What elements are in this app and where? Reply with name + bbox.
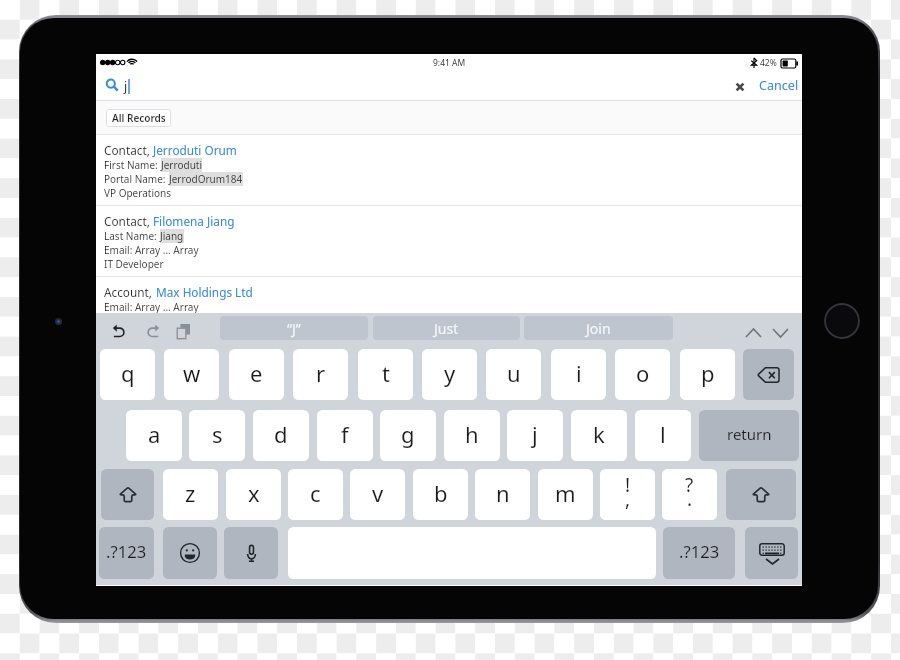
staticText: Join <box>586 319 611 338</box>
staticText: g <box>401 419 415 449</box>
staticText: r <box>316 358 326 388</box>
button[interactable]: Exclamation and comma <box>600 469 655 520</box>
staticText: k <box>593 419 605 449</box>
button[interactable]: q <box>100 349 155 400</box>
button[interactable]: i <box>551 349 606 400</box>
button[interactable]: d <box>253 410 309 461</box>
staticText: j <box>124 78 128 95</box>
button[interactable]: .?123 <box>99 527 154 579</box>
staticText: Email: Array ... Array <box>104 300 199 314</box>
button[interactable]: t <box>358 349 413 400</box>
button[interactable]: m <box>538 469 593 520</box>
staticText: Email: Array ... Array <box>104 243 199 257</box>
staticText: Jiang <box>160 229 184 243</box>
button[interactable]: c <box>288 469 343 520</box>
button[interactable]: Paste <box>177 324 190 339</box>
button[interactable]: o <box>615 349 670 400</box>
staticText: l <box>660 419 666 449</box>
staticText: u <box>507 358 521 388</box>
staticText: “J” <box>287 319 301 338</box>
staticText: f <box>341 419 349 449</box>
staticText: y <box>444 358 456 388</box>
staticText: Portal Name: <box>104 172 169 186</box>
staticText: Cancel <box>759 77 799 94</box>
button[interactable]: n <box>475 469 530 520</box>
button[interactable]: w <box>164 349 219 400</box>
staticText: h <box>465 419 479 449</box>
staticText: z <box>185 478 196 508</box>
staticText: t <box>382 358 390 388</box>
staticText: n <box>496 478 510 508</box>
staticText: 9:41 AM <box>433 57 466 69</box>
staticText: c <box>310 478 321 508</box>
staticText: o <box>636 358 650 388</box>
staticText: w <box>183 358 201 388</box>
button[interactable]: e <box>229 349 284 400</box>
staticText: ? <box>685 472 694 498</box>
button[interactable]: All Records <box>106 109 171 127</box>
button[interactable]: z <box>163 469 218 520</box>
button[interactable]: Contact, <box>96 206 802 276</box>
staticText: p <box>701 358 715 388</box>
button[interactable]: x <box>226 469 281 520</box>
staticText: return <box>727 424 772 444</box>
button[interactable]: Dictate <box>224 527 278 579</box>
staticText: q <box>121 358 135 388</box>
button[interactable]: j <box>507 410 563 461</box>
button[interactable]: Next <box>768 324 793 342</box>
button[interactable]: return <box>699 410 799 461</box>
button[interactable]: .?123 <box>663 527 735 579</box>
staticText: Contact, <box>104 142 153 158</box>
button[interactable]: r <box>293 349 348 400</box>
staticText: a <box>148 419 161 449</box>
staticText: ! <box>625 472 631 498</box>
staticText: 42% <box>760 57 777 69</box>
button[interactable]: Hide keyboard <box>745 527 798 579</box>
button[interactable]: Previous <box>741 324 766 342</box>
staticText: .?123 <box>679 540 720 563</box>
button[interactable]: f <box>317 410 373 461</box>
staticText: v <box>372 478 384 508</box>
button[interactable]: Just <box>373 316 520 340</box>
button[interactable]: k <box>571 410 627 461</box>
button[interactable]: Emoji <box>163 527 217 579</box>
button[interactable]: Cancel <box>759 77 799 94</box>
button[interactable]: a <box>126 410 182 461</box>
button[interactable]: s <box>189 410 245 461</box>
button[interactable]: p <box>680 349 735 400</box>
staticText: Last Name: <box>104 229 160 243</box>
staticText: x <box>248 478 260 508</box>
button[interactable]: Question and period <box>662 469 717 520</box>
staticText: Jerroduti Orum <box>153 142 237 158</box>
staticText: Filomena Jiang <box>153 213 235 229</box>
button[interactable]: y <box>422 349 477 400</box>
button[interactable]: l <box>635 410 691 461</box>
staticText: JerrodOrum184 <box>169 172 243 186</box>
button[interactable]: Shift <box>101 469 154 520</box>
button[interactable]: u <box>486 349 541 400</box>
staticText: All Records <box>112 111 166 125</box>
staticText: Account, <box>104 284 156 300</box>
staticText: Jerroduti <box>161 158 202 172</box>
button[interactable]: h <box>444 410 500 461</box>
button[interactable]: Shift right <box>726 469 796 520</box>
button[interactable]: Contact, <box>96 135 802 205</box>
button[interactable]: Join <box>524 316 673 340</box>
button[interactable]: Undo <box>113 325 127 339</box>
staticText: m <box>555 478 576 508</box>
button[interactable]: Search <box>106 79 118 91</box>
button[interactable]: Redo <box>145 325 159 339</box>
staticText: e <box>250 358 263 388</box>
button[interactable]: b <box>413 469 468 520</box>
staticText: VP Operations <box>104 186 171 200</box>
button[interactable]: Backspace <box>743 349 794 400</box>
staticText: i <box>576 358 582 388</box>
button[interactable]: “J” <box>220 316 368 340</box>
button[interactable]: g <box>380 410 436 461</box>
staticText: s <box>212 419 223 449</box>
button[interactable]: Account, <box>96 277 802 347</box>
staticText: , <box>625 486 631 512</box>
button[interactable]: v <box>350 469 405 520</box>
button[interactable]: Clear <box>732 79 747 94</box>
